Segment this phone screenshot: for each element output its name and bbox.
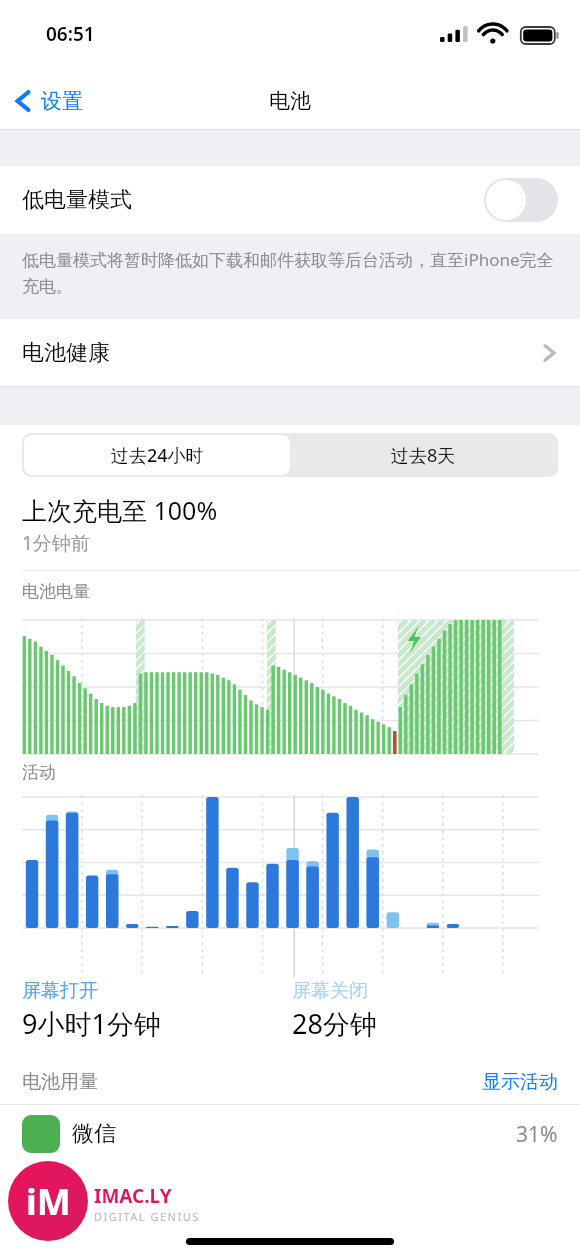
staticText: 微信 bbox=[72, 1120, 116, 1148]
staticText: 过去24小时 bbox=[111, 443, 204, 468]
button[interactable]: 显示活动 bbox=[482, 1070, 558, 1094]
staticText: IMAC.LY bbox=[94, 1183, 172, 1209]
staticText: 上次充电至 100% bbox=[22, 493, 218, 527]
staticText: 低电量模式将暂时降低如下载和邮件获取等后台活动，直至iPhone完全充电。 bbox=[22, 248, 554, 297]
staticText: 06:51 bbox=[46, 21, 95, 47]
staticText: 过去8天 bbox=[391, 443, 456, 468]
staticText: 28分钟 bbox=[292, 1005, 377, 1042]
button[interactable]: 低电量模式 bbox=[0, 166, 580, 234]
staticText: 显示活动 bbox=[482, 1070, 558, 1094]
staticText: 1分钟前 bbox=[22, 530, 90, 556]
staticText: 电池电量 bbox=[22, 581, 90, 602]
staticText: iM bbox=[26, 1177, 71, 1226]
button[interactable]: 电池健康 bbox=[0, 319, 580, 387]
staticText: DIGITAL GENIUS bbox=[94, 1209, 200, 1224]
button[interactable]: 过去8天 bbox=[290, 435, 556, 475]
staticText: 电池健康 bbox=[22, 339, 110, 367]
staticText: 电池 bbox=[269, 88, 311, 114]
staticText: 31% bbox=[516, 1120, 558, 1149]
staticText: 低电量模式 bbox=[22, 186, 132, 214]
staticText: 电池用量 bbox=[22, 1070, 98, 1094]
staticText: 活动 bbox=[22, 762, 56, 783]
staticText: 9小时1分钟 bbox=[22, 1005, 161, 1042]
button[interactable]: 低电量模式开关 bbox=[484, 178, 558, 222]
button[interactable]: 设置 bbox=[0, 72, 95, 130]
staticText: 设置 bbox=[41, 88, 83, 114]
staticText: 屏幕打开 bbox=[22, 979, 98, 1003]
button[interactable]: 过去24小时 bbox=[24, 435, 290, 475]
button[interactable]: 微信 bbox=[0, 1105, 580, 1163]
staticText: 屏幕关闭 bbox=[292, 979, 368, 1003]
